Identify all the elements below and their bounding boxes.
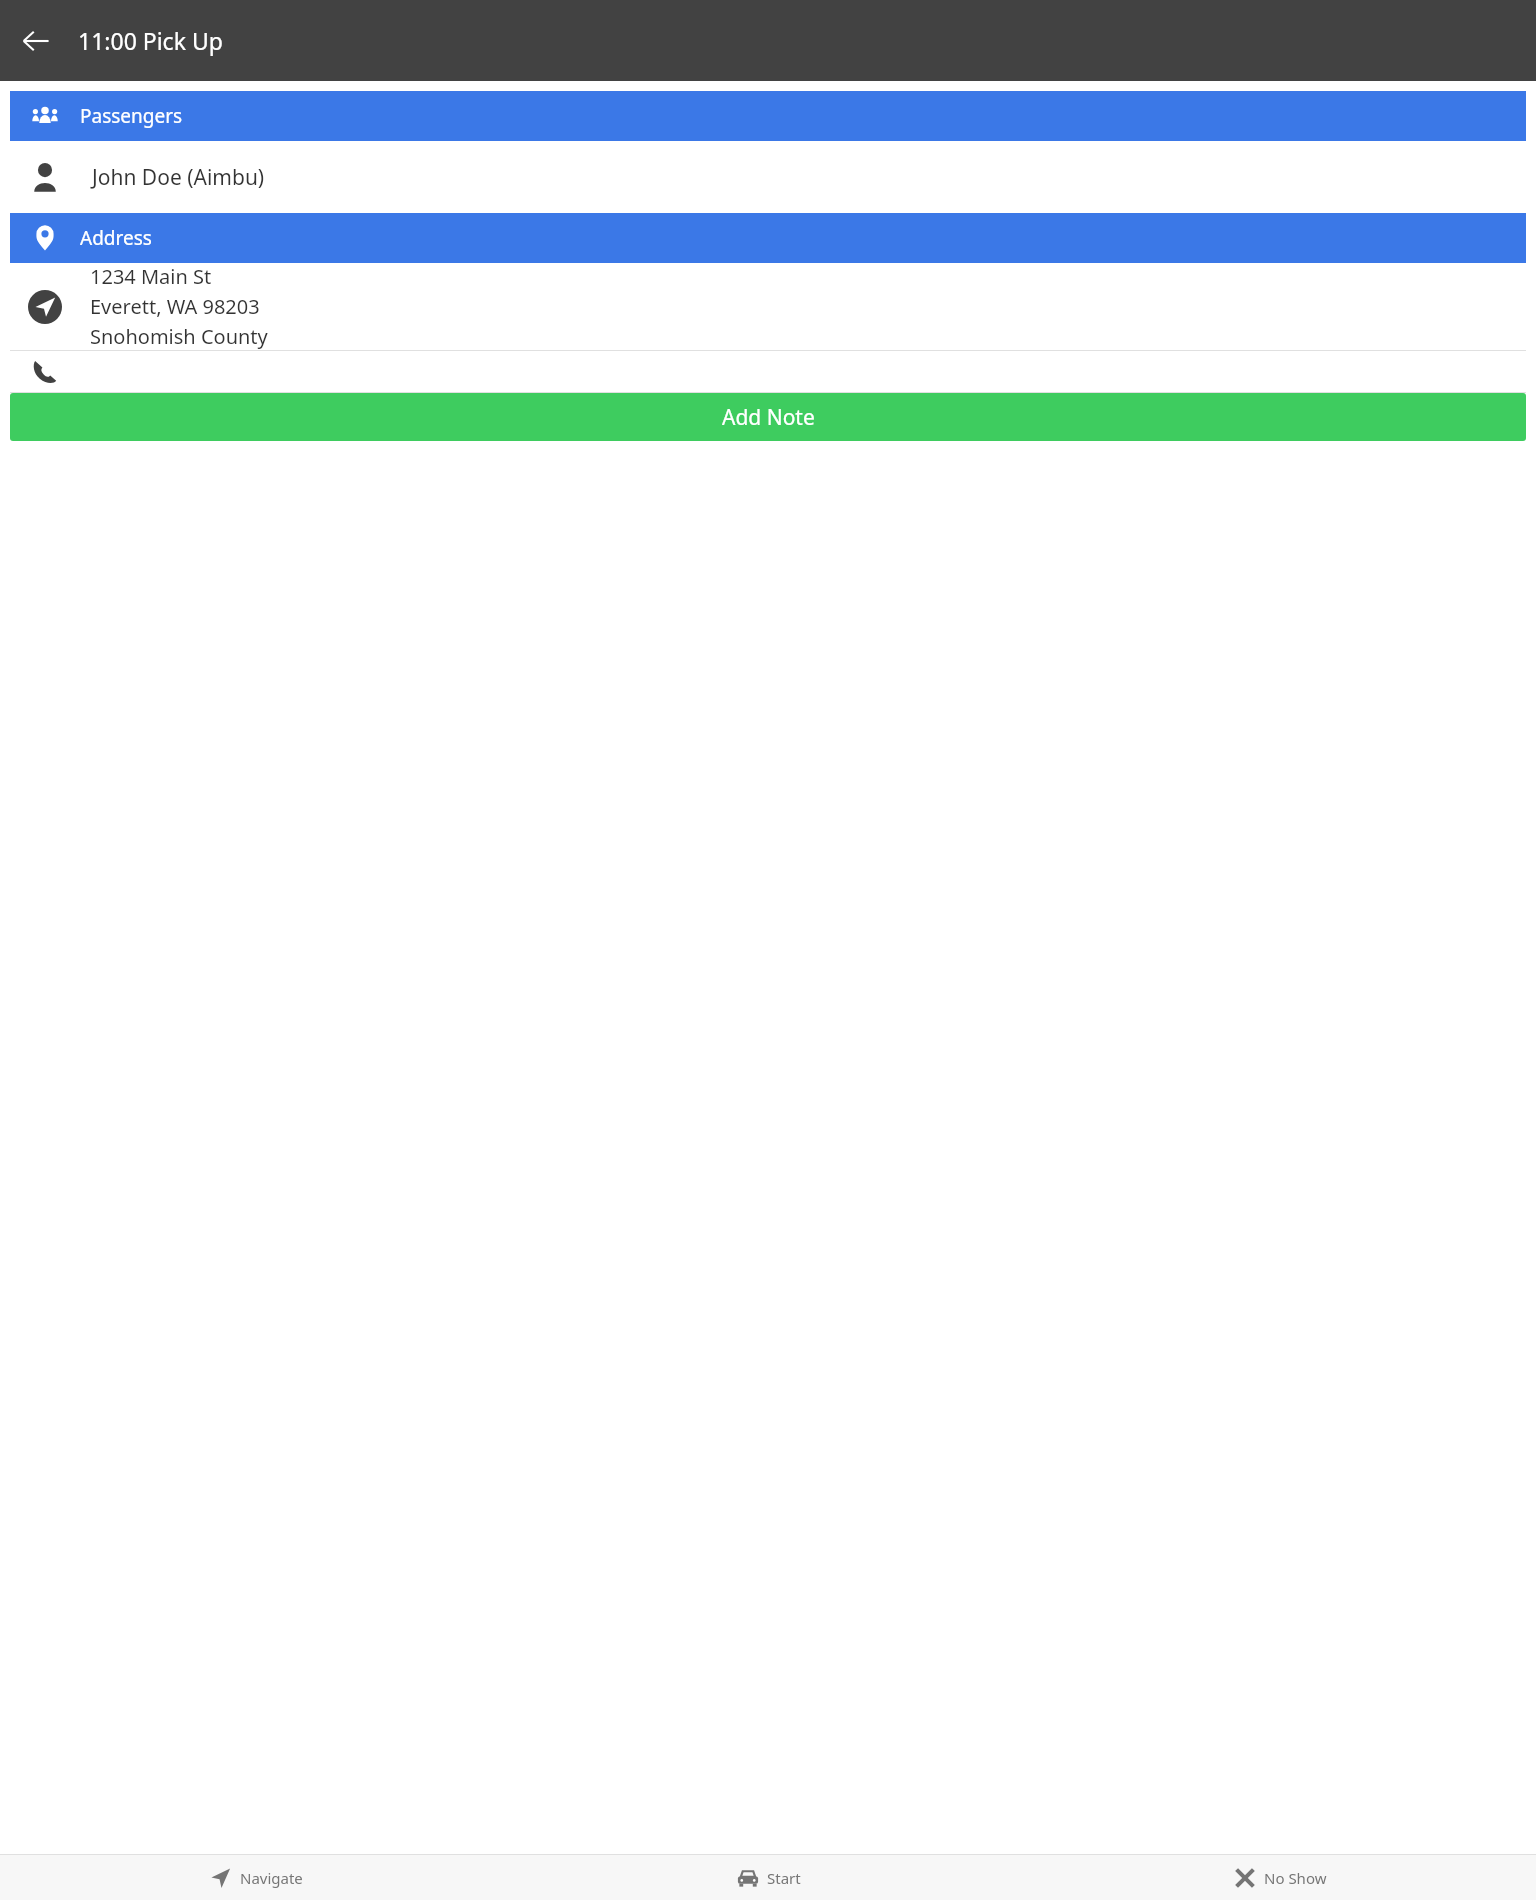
staticText: Everett, WA 98203 bbox=[90, 293, 260, 320]
staticText: Snohomish County bbox=[90, 323, 268, 350]
button[interactable]: Add Note bbox=[10, 393, 1526, 441]
button[interactable]: Start bbox=[512, 1855, 1024, 1900]
staticText: No Show bbox=[1264, 1868, 1327, 1888]
staticText: Navigate bbox=[240, 1868, 303, 1888]
button[interactable]: Back bbox=[8, 13, 64, 69]
button[interactable]: Call bbox=[10, 351, 1526, 392]
button[interactable]: No Show bbox=[1024, 1855, 1536, 1900]
staticText: 11:00 Pick Up bbox=[78, 25, 223, 56]
staticText: Address bbox=[80, 225, 152, 251]
staticText: Add Note bbox=[722, 403, 815, 432]
button[interactable]: Address bbox=[10, 213, 1526, 263]
button[interactable]: Passengers bbox=[10, 91, 1526, 141]
staticText: 1234 Main St bbox=[90, 263, 212, 290]
staticText: Passengers bbox=[80, 103, 183, 129]
button[interactable]: 1234 Main St bbox=[10, 263, 1526, 350]
button[interactable]: John Doe (Aimbu) bbox=[10, 141, 1526, 213]
button[interactable]: Navigate bbox=[0, 1855, 512, 1900]
staticText: John Doe (Aimbu) bbox=[92, 163, 265, 192]
staticText: Start bbox=[767, 1868, 801, 1888]
